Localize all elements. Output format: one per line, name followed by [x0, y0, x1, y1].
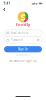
staticText: Password [11, 38, 23, 42]
staticText: foodly [16, 22, 30, 27]
staticText: Sign In [18, 47, 28, 51]
button[interactable]: Forgot Password? [15, 53, 31, 56]
staticText: No account? Sign Up [9, 59, 37, 63]
staticText: Forgot Password? [16, 54, 30, 56]
button[interactable]: Back [2, 6, 7, 13]
button[interactable]: Sign In [4, 46, 42, 52]
staticText: 9:41 [4, 2, 11, 5]
button[interactable]: No account? Sign Up [8, 59, 38, 63]
staticText: Email address [11, 31, 28, 35]
staticText: S [20, 11, 25, 23]
